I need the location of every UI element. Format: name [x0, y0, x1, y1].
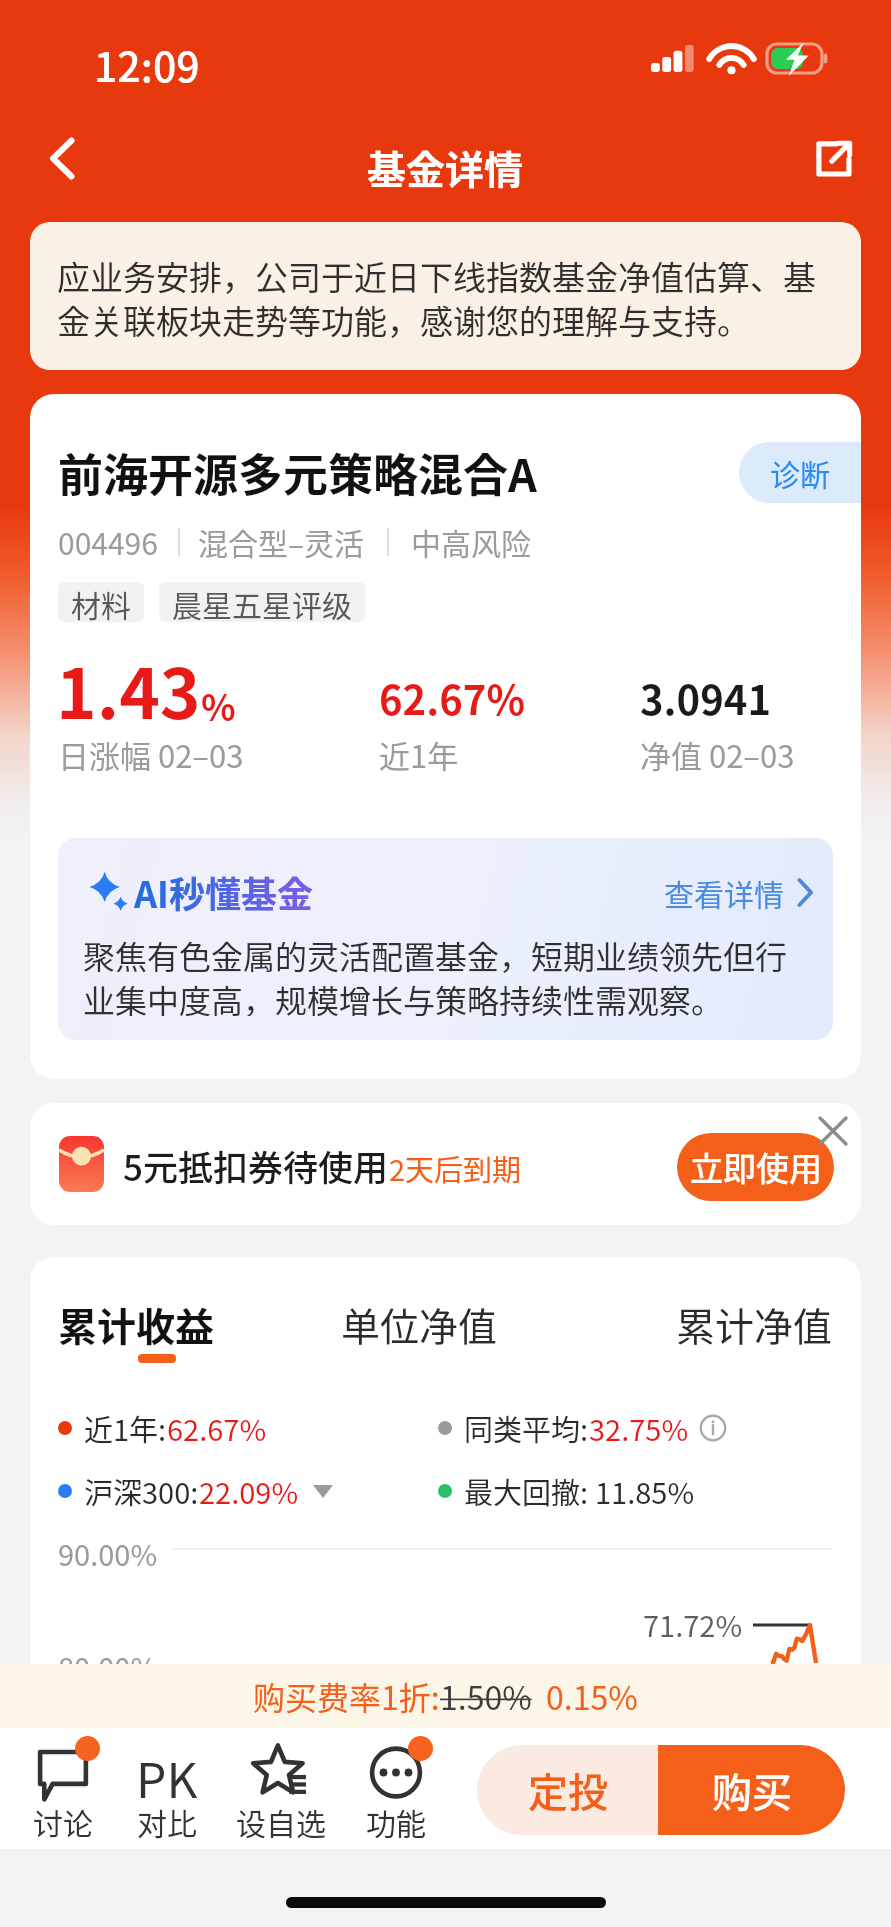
- staticText: 80.00%: [58, 1645, 158, 1664]
- staticText: 22.09%: [199, 1470, 299, 1512]
- staticText: 中高风险: [411, 520, 531, 563]
- staticText: %: [201, 679, 236, 731]
- button[interactable]: AI秒懂基金: [58, 838, 833, 1040]
- staticText: 功能: [366, 1800, 426, 1843]
- button[interactable]: 立即使用: [677, 1133, 834, 1201]
- staticText: 应业务安排，公司于近日下线指数基金净值估算、基金关联板块走势等功能，感谢您的理解…: [57, 252, 834, 344]
- button[interactable]: PK: [109, 1728, 225, 1844]
- staticText: 004496: [58, 520, 158, 563]
- button[interactable]: 购买: [658, 1745, 845, 1835]
- button[interactable]: 累计收益: [58, 1296, 215, 1352]
- button[interactable]: 单位净值: [341, 1296, 498, 1352]
- staticText: 3.0941: [640, 669, 771, 727]
- staticText: 同类平均:: [464, 1407, 589, 1449]
- staticText: 购买费率1折:: [253, 1673, 440, 1719]
- staticText: 1.43: [56, 639, 201, 739]
- staticText: 诊断: [770, 451, 830, 494]
- staticText: 讨论: [33, 1800, 93, 1843]
- button[interactable]: 应业务安排，公司于近日下线指数基金净值估算、基金关联板块走势等功能，感谢您的理解…: [30, 222, 861, 370]
- button[interactable]: 功能: [338, 1728, 454, 1844]
- staticText: 晨星五星评级: [172, 582, 352, 622]
- staticText: 材料: [71, 582, 131, 622]
- staticText: 前海开源多元策略混合A: [58, 440, 537, 505]
- button[interactable]: Share: [795, 120, 871, 196]
- staticText: 近1年: [379, 732, 459, 777]
- staticText: 设自选: [236, 1800, 326, 1843]
- staticText: 购买: [712, 1761, 792, 1819]
- staticText: 5元抵扣券待使用: [123, 1140, 388, 1191]
- staticText: PK: [136, 1742, 198, 1812]
- staticText: 1.50%: [440, 1673, 532, 1719]
- staticText: 近1年:: [84, 1407, 167, 1449]
- staticText: 62.67%: [379, 669, 525, 727]
- staticText: 11.85%: [595, 1470, 695, 1512]
- staticText: 90.00%: [58, 1532, 158, 1574]
- staticText: 净值 02–03: [640, 732, 795, 777]
- staticText: 聚焦有色金属的灵活配置基金，短期业绩领先但行业集中度高，规模增长与策略持续性需观…: [83, 932, 813, 1016]
- button[interactable]: Back: [24, 120, 100, 196]
- staticText: 12:09: [94, 34, 200, 93]
- staticText: 查看详情: [664, 871, 784, 914]
- button[interactable]: 讨论: [5, 1728, 121, 1844]
- button[interactable]: 累计净值: [676, 1296, 833, 1352]
- staticText: 混合型–灵活: [198, 520, 365, 563]
- staticText: 最大回撤:: [464, 1470, 595, 1512]
- staticText: 2天后到期: [389, 1147, 522, 1189]
- staticText: 日涨幅 02–03: [58, 732, 244, 777]
- staticText: 0.15%: [546, 1673, 638, 1719]
- staticText: 立即使用: [690, 1143, 822, 1191]
- button[interactable]: 设自选: [223, 1728, 339, 1844]
- staticText: 沪深300:: [84, 1470, 199, 1512]
- staticText: 基金详情: [367, 139, 524, 195]
- button[interactable]: Close: [805, 1103, 861, 1159]
- staticText: 32.75%: [589, 1407, 689, 1449]
- staticText: 71.72%: [643, 1603, 743, 1645]
- button[interactable]: 定投: [477, 1745, 658, 1835]
- staticText: AI秒懂基金: [134, 866, 313, 918]
- button[interactable]: 诊断: [739, 442, 861, 503]
- staticText: 对比: [137, 1800, 197, 1843]
- staticText: 62.67%: [167, 1407, 267, 1449]
- staticText: 定投: [528, 1761, 608, 1819]
